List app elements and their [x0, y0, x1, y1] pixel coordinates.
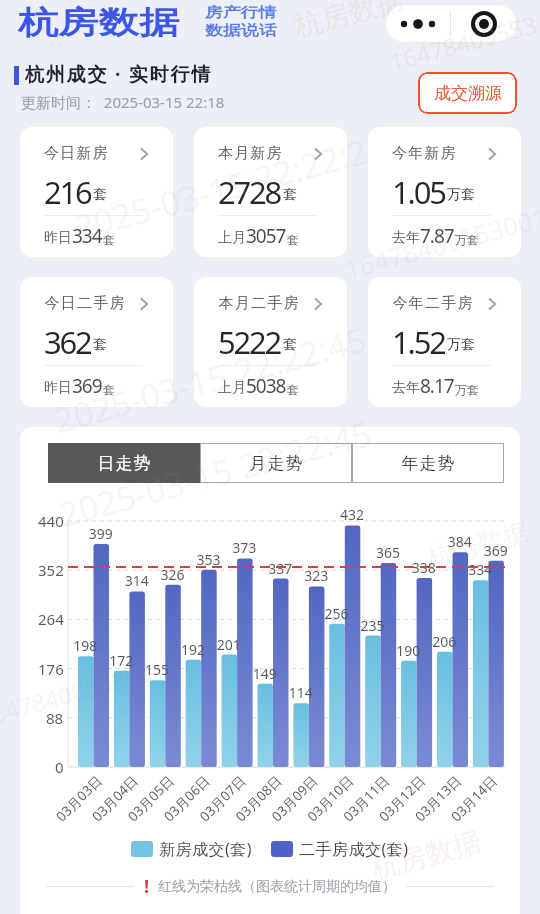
- staticText: 6478400553001: [0, 652, 169, 730]
- staticText: 套: [287, 232, 299, 247]
- staticText: 2025-03-15 22:22:45: [54, 409, 377, 537]
- button[interactable]: 成交溯源: [418, 72, 517, 114]
- button[interactable]: 月走势: [200, 443, 352, 483]
- staticText: 套: [283, 186, 297, 204]
- staticText: 套: [103, 232, 115, 247]
- staticText: 杭州成交 · 实时行情: [25, 61, 213, 87]
- staticText: 昨日: [44, 379, 72, 397]
- staticText: 万套: [455, 232, 479, 247]
- staticText: 房产行情: [205, 4, 277, 22]
- staticText: 昨日: [44, 229, 72, 247]
- staticText: 万套: [447, 186, 475, 204]
- button[interactable]: 日走势: [48, 443, 200, 483]
- staticText: 5222: [218, 321, 281, 359]
- staticText: 新房成交(套): [159, 838, 253, 860]
- staticText: 16478409553: [386, 7, 540, 78]
- staticText: 杭房数据: [367, 824, 485, 886]
- staticText: 本月新房: [218, 144, 283, 163]
- staticText: 年走势: [401, 453, 455, 474]
- staticText: 369: [72, 373, 102, 399]
- staticText: 万套: [447, 336, 475, 354]
- staticText: 月走势: [249, 453, 303, 474]
- staticText: 362: [44, 321, 91, 359]
- staticText: 3057: [246, 223, 286, 249]
- staticText: 套: [283, 336, 297, 354]
- staticText: 2728: [218, 171, 281, 209]
- staticText: 16478409553001: [340, 198, 540, 286]
- staticText: 更新时间： 2025-03-15 22:18: [21, 92, 225, 112]
- staticText: 1.05: [392, 171, 445, 209]
- button[interactable]: 本月二手房: [194, 277, 347, 407]
- staticText: 成交溯源: [434, 83, 502, 104]
- button[interactable]: 今日二手房: [20, 277, 173, 407]
- staticText: 二手房成交(套): [299, 838, 409, 860]
- staticText: 今年新房: [392, 144, 457, 163]
- staticText: !: [144, 874, 150, 899]
- staticText: 杭房数据: [424, 516, 533, 574]
- staticText: 红线为荣枯线（图表统计周期的均值）: [158, 878, 396, 896]
- staticText: 上月: [218, 379, 246, 397]
- staticText: 216: [44, 171, 91, 209]
- button[interactable]: [451, 4, 517, 43]
- staticText: 套: [287, 382, 299, 397]
- staticText: 今日二手房: [44, 294, 125, 313]
- staticText: 1.52: [392, 321, 445, 359]
- button[interactable]: 今年新房: [368, 127, 521, 257]
- staticText: 去年: [392, 379, 420, 397]
- staticText: 本月二手房: [218, 294, 299, 313]
- staticText: 今年二手房: [392, 294, 473, 313]
- staticText: 套: [93, 186, 107, 204]
- staticText: 5038: [246, 373, 286, 399]
- staticText: 7.87: [420, 223, 454, 249]
- staticText: 今日新房: [44, 144, 109, 163]
- button[interactable]: 本月新房: [194, 127, 347, 257]
- button[interactable]: 年走势: [352, 443, 504, 483]
- staticText: 2025-03-15 22:22:2: [69, 128, 373, 250]
- staticText: 杭房数据: [290, 0, 408, 44]
- staticText: 去年: [392, 229, 420, 247]
- staticText: 334: [72, 223, 102, 249]
- staticText: 2025-03-15 22:22:45: [49, 315, 372, 443]
- staticText: 数据说话: [205, 22, 277, 40]
- staticText: 8.17: [420, 373, 454, 399]
- staticText: 套: [103, 382, 115, 397]
- staticText: 日走势: [97, 453, 151, 474]
- button[interactable]: [385, 4, 450, 43]
- staticText: 杭房数据: [18, 3, 179, 42]
- staticText: 万套: [455, 382, 479, 397]
- staticText: 套: [93, 336, 107, 354]
- staticText: 上月: [218, 229, 246, 247]
- button[interactable]: 今年二手房: [368, 277, 521, 407]
- button[interactable]: 今日新房: [20, 127, 173, 257]
